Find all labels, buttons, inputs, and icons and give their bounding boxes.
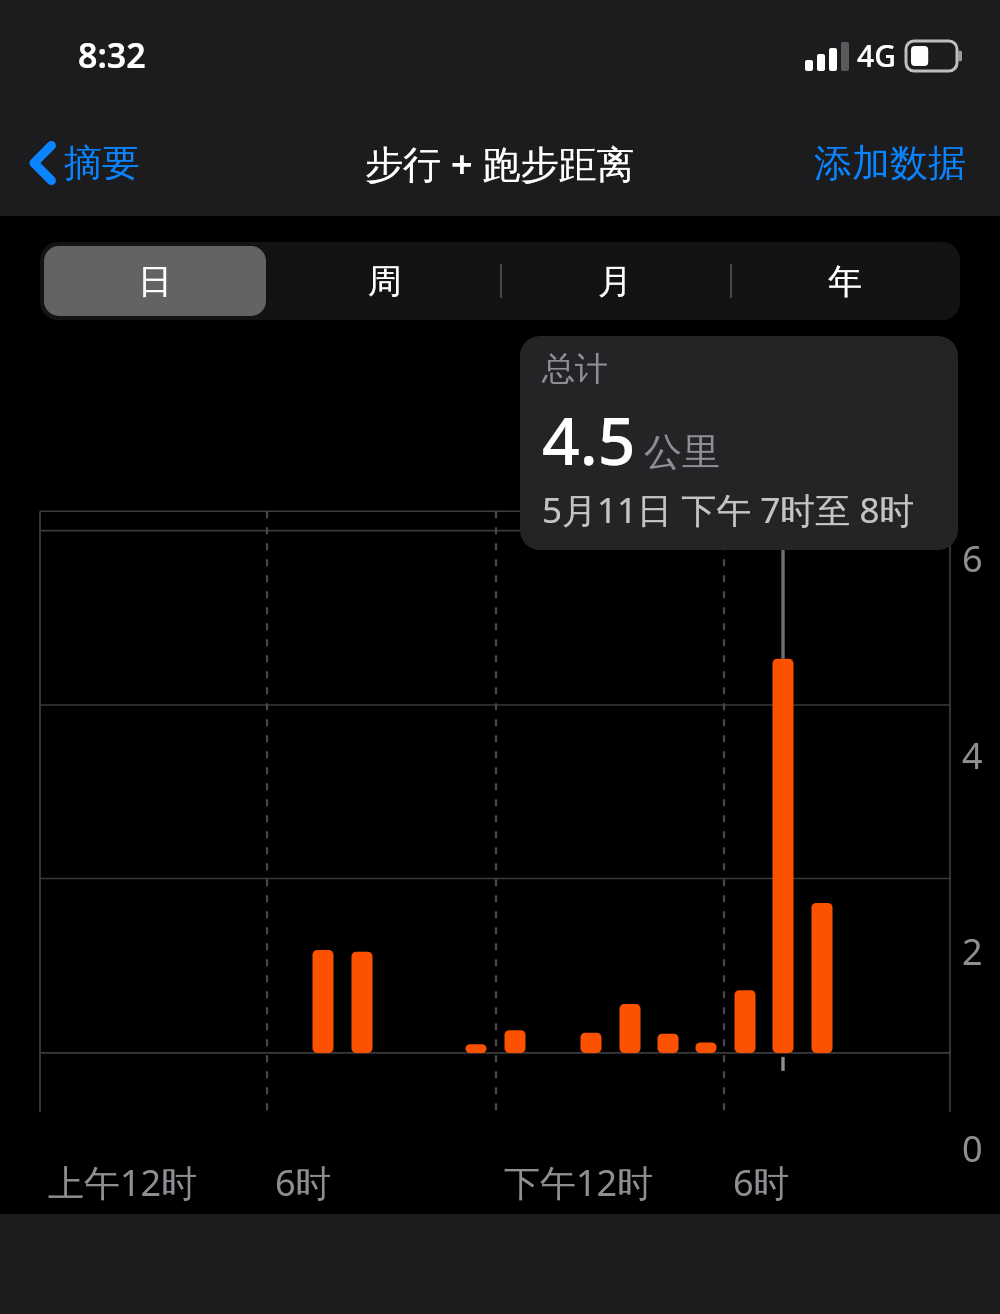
staticText: 5月11日 下午 7时至 8时 [542,486,915,534]
staticText: 年 [828,260,862,303]
staticText: 4G [857,35,896,76]
staticText: 2 [962,927,998,976]
button[interactable]: 月 [500,242,730,320]
staticText: 添加数据 [814,139,966,187]
staticText: 6时 [733,1158,790,1207]
staticText: 总计 [542,348,608,390]
staticText: 月 [598,260,632,303]
staticText: 步行 + 跑步距离 [365,137,635,189]
staticText: 公里 [644,428,720,476]
staticText: 0 [962,1124,998,1173]
staticText: 摘要 [64,139,140,187]
staticText: 4 [962,731,998,780]
staticText: 周 [368,260,402,303]
button[interactable]: 年 [730,242,960,320]
button[interactable]: 摘要 [0,131,156,195]
button[interactable]: 日 [40,242,270,320]
staticText: 6时 [275,1158,332,1207]
staticText: 日 [138,260,172,303]
button[interactable]: 周 [270,242,500,320]
staticText: 8:32 [78,32,146,78]
button[interactable]: 添加数据 [798,131,1000,195]
staticText: 下午12时 [504,1158,654,1207]
staticText: 4.5 [542,394,636,484]
staticText: 上午12时 [48,1158,198,1207]
staticText: 6 [962,534,998,583]
button[interactable]: 总计 [520,336,958,550]
